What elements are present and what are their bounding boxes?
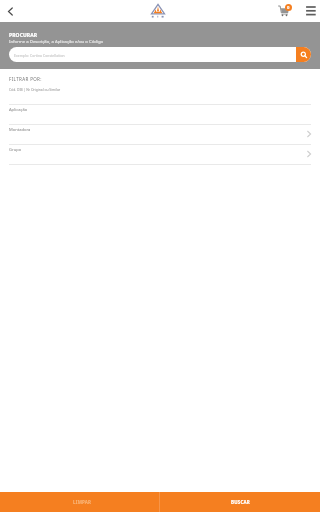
staticText: LIMPAR	[73, 499, 92, 505]
button[interactable]: BUSCAR	[160, 492, 320, 512]
button[interactable]: Grupo	[0, 144, 320, 164]
staticText: BUSCAR	[231, 499, 250, 505]
staticText: Cód. DIB | Nº Original ou Similar	[9, 87, 61, 92]
staticText: PROCURAR	[9, 32, 38, 39]
staticText: Aplicação	[9, 107, 28, 113]
button[interactable]: Search	[296, 47, 311, 62]
button[interactable]: Montadora	[0, 124, 320, 144]
button[interactable]: Menu	[302, 0, 320, 22]
button[interactable]: Aplicação	[0, 104, 320, 124]
button[interactable]: Back	[0, 0, 22, 22]
button[interactable]: Cart	[274, 0, 294, 22]
staticText: Montadora	[9, 127, 31, 133]
staticText: Grupo	[9, 147, 22, 153]
staticText: FILTRAR POR:	[9, 76, 42, 82]
staticText: Exemplo: Cortina Constellation	[14, 53, 296, 57]
staticText: 0	[287, 5, 290, 11]
staticText: Informe a Descrição, a Aplicação e/ou o …	[9, 38, 104, 44]
button[interactable]: LIMPAR	[0, 492, 159, 512]
